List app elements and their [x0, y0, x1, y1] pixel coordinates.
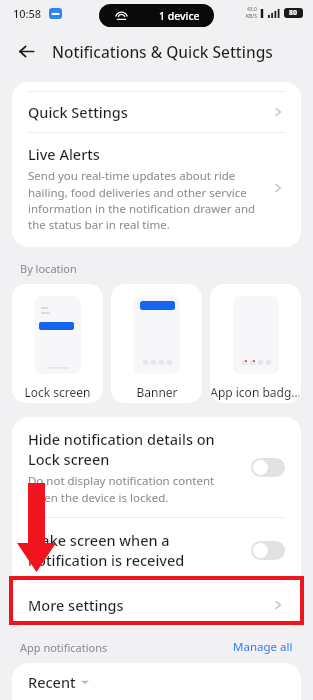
button[interactable]: Lock screen: [12, 284, 103, 403]
staticText: Lock screen: [24, 384, 91, 400]
staticText: KB/S: [246, 13, 257, 20]
staticText: By location: [20, 261, 77, 276]
button[interactable]: App icon badg…: [210, 284, 301, 403]
staticText: 80: [289, 8, 298, 18]
staticText: Live Alerts: [28, 144, 100, 164]
staticText: More settings: [28, 595, 271, 615]
staticText: App notifications: [20, 640, 233, 655]
staticText: Notifications & Quick Settings: [52, 41, 273, 62]
staticText: 1 device: [159, 9, 200, 23]
staticText: Do not display notification content when…: [28, 473, 241, 505]
button[interactable]: Recent: [12, 663, 301, 700]
staticText: Quick Settings: [28, 102, 271, 122]
staticText: Hide notification details on Lock screen: [28, 429, 241, 469]
staticText: Banner: [136, 384, 178, 400]
staticText: Wake screen when a notification is recei…: [28, 530, 241, 570]
staticText: App icon badg…: [210, 384, 301, 400]
button[interactable]: Hide notification details on Lock screen: [12, 417, 301, 517]
button[interactable]: Live Alerts: [12, 133, 301, 243]
staticText: Manage all: [233, 639, 293, 655]
button[interactable]: Back: [12, 37, 40, 65]
button[interactable]: More settings: [12, 583, 301, 627]
button[interactable]: Banner: [111, 284, 202, 403]
button[interactable]: Manage all: [233, 639, 293, 655]
button[interactable]: Wake screen when a notification is recei…: [12, 518, 301, 582]
button[interactable]: Toggle: [251, 541, 285, 560]
staticText: 10:58: [13, 6, 42, 21]
button[interactable]: Toggle: [251, 458, 285, 477]
staticText: Send you real-time updates about ride ha…: [28, 168, 263, 232]
staticText: 43.0: [247, 6, 257, 13]
button[interactable]: Quick Settings: [12, 92, 301, 132]
staticText: Recent: [28, 672, 76, 692]
